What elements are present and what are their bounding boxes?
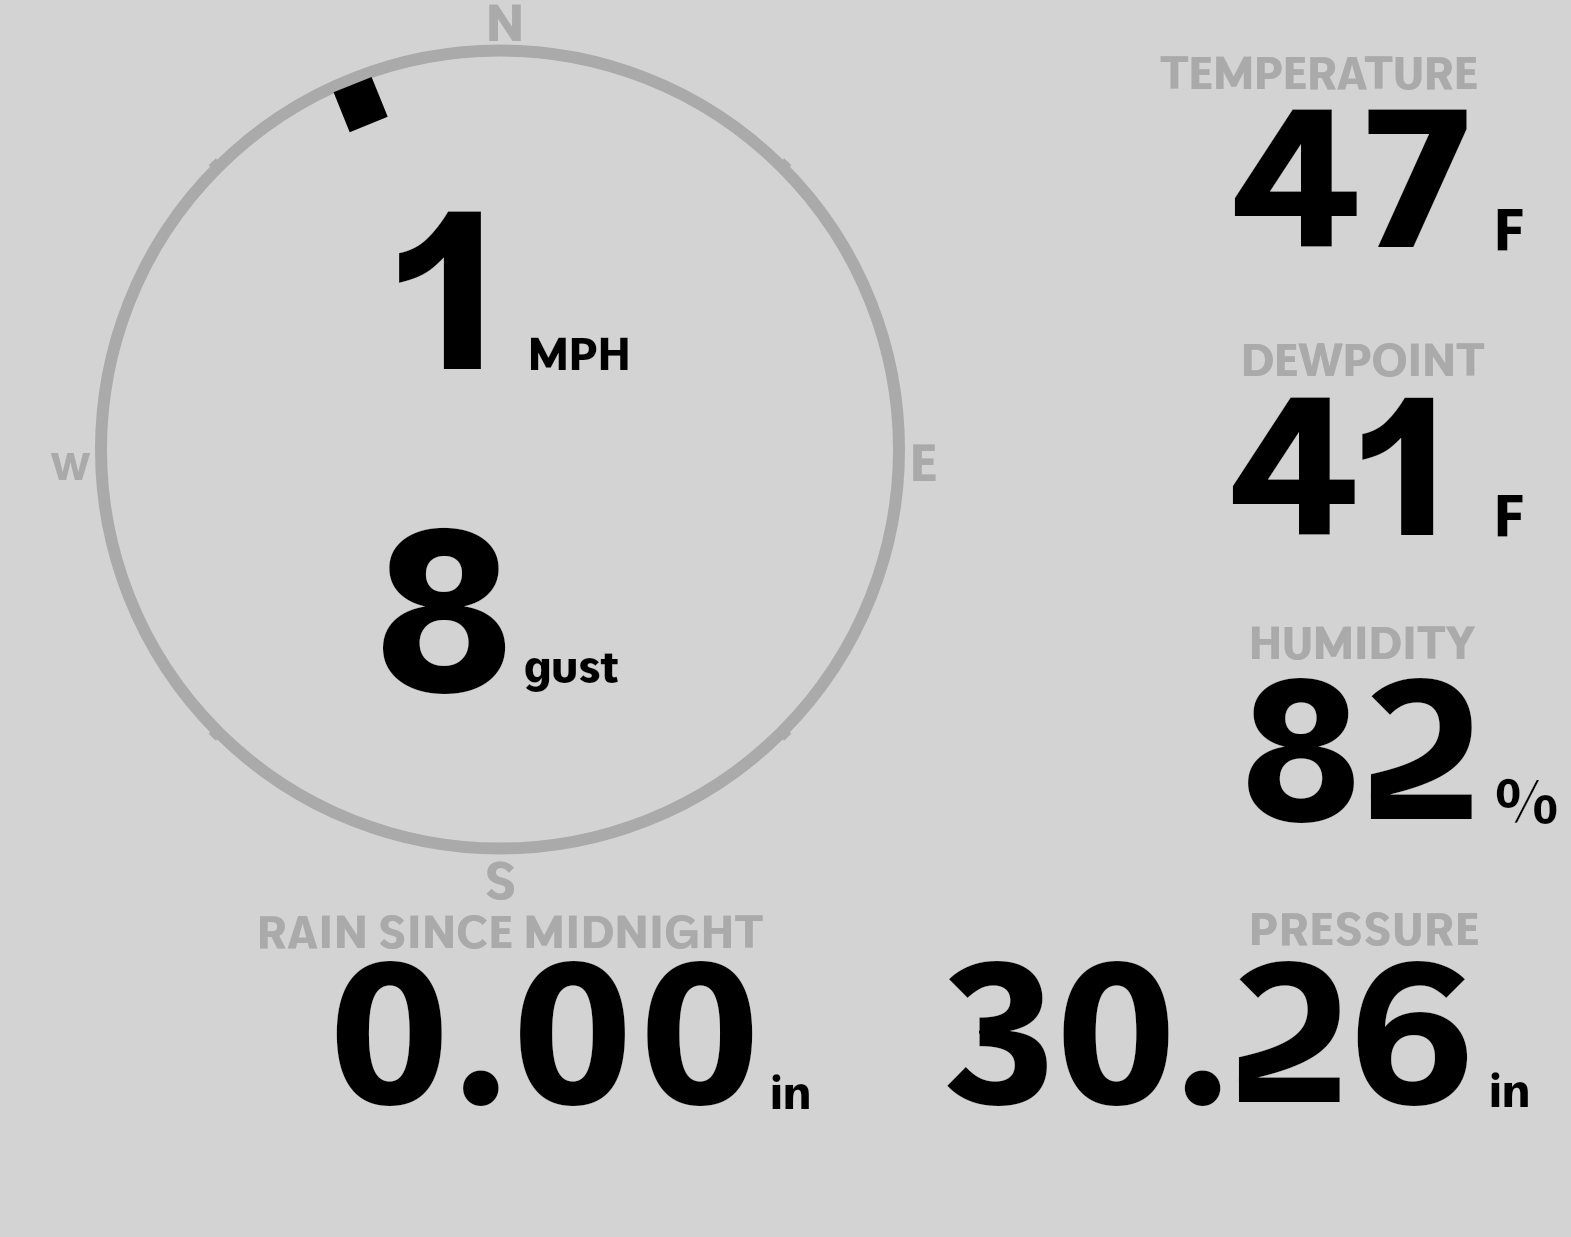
staticText: PRESSURE: [1249, 899, 1481, 957]
staticText: 41: [1229, 340, 1448, 584]
other: Wind direction compass: [0, 0, 1571, 1237]
staticText: S: [485, 847, 517, 912]
staticText: TEMPERATURE: [1160, 43, 1479, 101]
staticText: 1: [395, 144, 498, 425]
staticText: F: [1494, 192, 1525, 266]
staticText: 8: [376, 465, 513, 746]
staticText: %: [1495, 761, 1559, 839]
staticText: 30.26: [942, 907, 1475, 1151]
staticText: HUMIDITY: [1249, 613, 1476, 671]
staticText: F: [1494, 478, 1525, 552]
staticText: 82: [1242, 624, 1484, 868]
staticText: in: [770, 1062, 812, 1121]
staticText: MPH: [528, 324, 631, 382]
staticText: W: [51, 441, 90, 490]
staticText: 47: [1231, 52, 1471, 296]
staticText: in: [1489, 1060, 1531, 1119]
staticText: RAIN SINCE MIDNIGHT: [257, 902, 764, 960]
staticText: gust: [524, 636, 619, 694]
staticText: DEWPOINT: [1241, 330, 1485, 388]
staticText: 0.00: [328, 907, 766, 1151]
staticText: E: [910, 429, 938, 494]
staticText: N: [486, 0, 525, 54]
